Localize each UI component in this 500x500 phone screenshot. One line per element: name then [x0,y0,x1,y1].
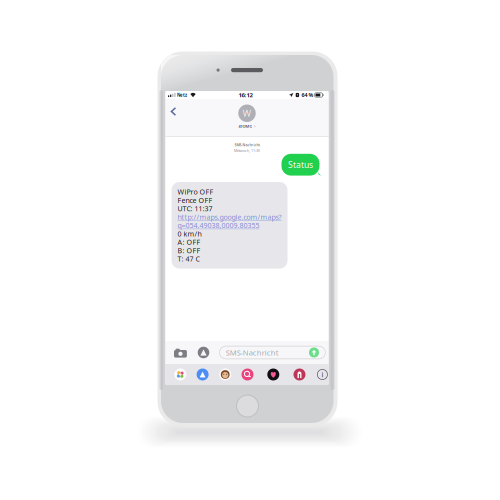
button[interactable]: App Store [196,368,209,381]
staticText: A: OFF [177,237,200,247]
staticText: SMS-Nachricht [234,142,259,147]
button[interactable]: Camera [173,347,188,358]
staticText: Fence OFF [177,195,212,205]
button[interactable]: Info [316,368,329,381]
staticText: Mittwoch, 11:30 [234,148,260,153]
staticText: WiPro OFF [177,187,213,197]
button[interactable]: Images [241,368,254,381]
button[interactable]: Send [309,347,319,357]
staticText: Status [288,159,313,171]
staticText: UTC: 11:37 [177,204,212,213]
button[interactable]: App Store [197,346,210,359]
staticText: q=054.49038,0009.80355 [177,220,259,230]
button[interactable]: Memoji [219,368,232,381]
staticText: SMS-Nachricht [226,347,279,358]
button[interactable]: Digital Touch [293,368,306,381]
staticText: T: 47 C [177,254,199,264]
staticText: > [254,123,256,129]
staticText: Netz [177,92,187,98]
staticText: http://maps.google.com/maps? [177,212,281,222]
staticText: 4TOMO [238,123,252,129]
staticText: 16:12 [238,91,252,99]
button[interactable]: Photos [174,368,187,381]
staticText: 0 km/h [177,229,201,238]
button[interactable]: Back [166,103,180,120]
staticText: W [242,107,251,120]
staticText: 64 % [301,91,313,99]
staticText: B: OFF [177,246,200,255]
button[interactable]: Music [267,368,280,381]
staticText: i [321,370,323,379]
